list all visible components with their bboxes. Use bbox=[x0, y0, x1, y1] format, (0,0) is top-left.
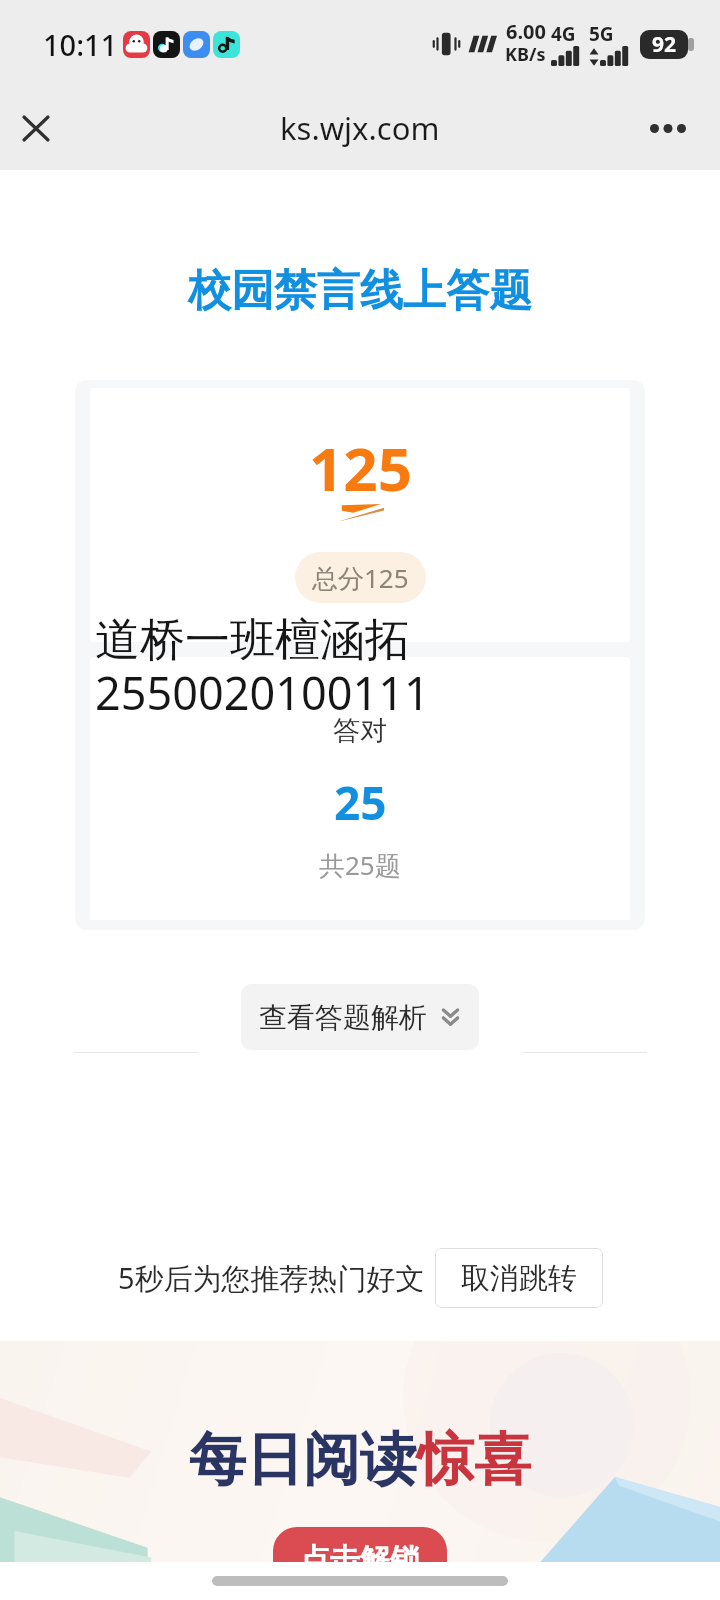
staticText: 4G bbox=[551, 21, 576, 47]
button[interactable]: Daily reading surprise bbox=[0, 1341, 720, 1562]
staticText: 125 bbox=[309, 427, 412, 509]
button[interactable]: 取消跳转 bbox=[435, 1248, 603, 1308]
staticText: 答对 bbox=[333, 714, 387, 748]
staticText: 共25题 bbox=[319, 847, 401, 883]
staticText: 2550020100111 bbox=[95, 662, 430, 723]
button[interactable]: 点击解锁 bbox=[273, 1527, 447, 1562]
button[interactable]: Close bbox=[8, 100, 64, 156]
staticText: 5G bbox=[589, 21, 614, 47]
staticText: 点击解锁 bbox=[300, 1541, 420, 1562]
staticText: 10:11 bbox=[43, 25, 118, 64]
staticText: ks.wjx.com bbox=[280, 107, 440, 149]
staticText: 查看答题解析 bbox=[259, 1000, 427, 1035]
staticText: 总分125 bbox=[312, 560, 409, 596]
button[interactable]: More options bbox=[640, 100, 696, 156]
button[interactable]: 查看答题解析 bbox=[241, 984, 479, 1050]
staticText: 道桥一班檀涵拓 bbox=[95, 612, 410, 669]
staticText: 校园禁言线上答题 bbox=[0, 264, 720, 318]
staticText: 92 bbox=[652, 30, 677, 59]
staticText: KB/s bbox=[505, 42, 546, 67]
staticText: 每日阅读 bbox=[189, 1424, 417, 1496]
staticText: 5秒后为您推荐热门好文 bbox=[118, 1258, 425, 1298]
staticText: 25 bbox=[334, 771, 387, 834]
staticText: 惊喜 bbox=[417, 1424, 531, 1496]
staticText: 6.00 bbox=[506, 18, 546, 45]
staticText: 取消跳转 bbox=[461, 1260, 577, 1297]
